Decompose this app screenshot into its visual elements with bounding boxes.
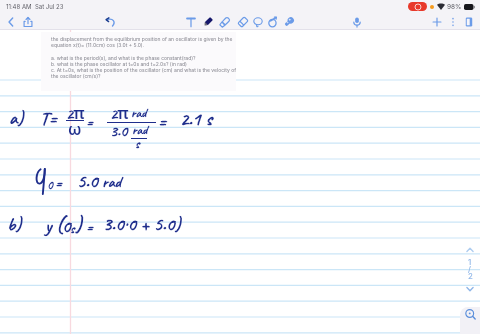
staticText: T= bbox=[40, 107, 58, 131]
staticText: 11:48 AM bbox=[6, 3, 32, 10]
staticText: 3.0 bbox=[110, 121, 128, 141]
staticText: Sat Jul 23 bbox=[35, 3, 64, 10]
button[interactable]: Add bbox=[430, 15, 444, 29]
staticText: the displacement from the equilibrium po… bbox=[51, 36, 233, 42]
button[interactable]: More options bbox=[446, 15, 460, 29]
staticText: rad bbox=[132, 122, 148, 138]
staticText: a. what is the period(s), and what is th… bbox=[51, 55, 196, 61]
staticText: ( bbox=[56, 211, 63, 237]
button[interactable]: Highlighter tool bbox=[218, 15, 232, 29]
button[interactable]: Search bbox=[460, 307, 480, 334]
button[interactable]: Pages bbox=[462, 15, 476, 29]
staticText: b. what is the phase oscillator at t=0s … bbox=[51, 61, 187, 67]
button[interactable]: Eraser tool bbox=[236, 15, 250, 29]
staticText: equation x(t)= (11.0cm) cos (3.0t + 5.0)… bbox=[51, 42, 145, 48]
staticText: rad bbox=[131, 105, 147, 121]
button[interactable]: Share bbox=[21, 15, 35, 29]
staticText: ω bbox=[68, 118, 82, 140]
button[interactable]: Shape tool bbox=[266, 15, 280, 29]
staticText: s bbox=[135, 136, 140, 152]
staticText: = bbox=[55, 173, 63, 193]
staticText: 2π bbox=[110, 102, 129, 124]
staticText: c. At t=0s, what is the position of the … bbox=[51, 67, 237, 73]
staticText: the oscillator (cm/s)? bbox=[51, 73, 101, 79]
staticText: 98% bbox=[447, 3, 462, 11]
button[interactable]: Previous page bbox=[463, 243, 477, 257]
staticText: 0 bbox=[62, 214, 71, 238]
button[interactable]: Pen tool bbox=[201, 15, 215, 29]
staticText: a) bbox=[9, 106, 24, 130]
staticText: 3.0·0 + 5.0) bbox=[103, 212, 181, 236]
staticText: b) bbox=[7, 212, 22, 236]
staticText: = bbox=[86, 112, 94, 132]
button[interactable]: Next page bbox=[463, 282, 477, 296]
button[interactable]: Undo bbox=[103, 15, 117, 29]
staticText: 0 bbox=[47, 177, 53, 193]
staticText: 1 bbox=[468, 257, 472, 267]
staticText: 2π bbox=[66, 102, 85, 124]
button[interactable]: Magic tool bbox=[282, 15, 296, 29]
staticText: 2.1 s bbox=[180, 107, 212, 131]
staticText: 2 bbox=[468, 271, 473, 281]
staticText: = bbox=[158, 110, 167, 134]
staticText: rad bbox=[102, 172, 121, 192]
staticText: 5.0 bbox=[77, 169, 98, 193]
staticText: ) bbox=[75, 211, 82, 237]
staticText: s bbox=[70, 221, 75, 237]
staticText: y bbox=[45, 214, 52, 238]
button[interactable]: Lasso tool bbox=[251, 15, 265, 29]
button[interactable]: Text tool bbox=[184, 15, 198, 29]
button[interactable]: Back bbox=[4, 15, 18, 29]
staticText: = bbox=[86, 217, 94, 237]
staticText: / bbox=[468, 264, 471, 274]
button[interactable]: Microphone bbox=[350, 15, 364, 29]
